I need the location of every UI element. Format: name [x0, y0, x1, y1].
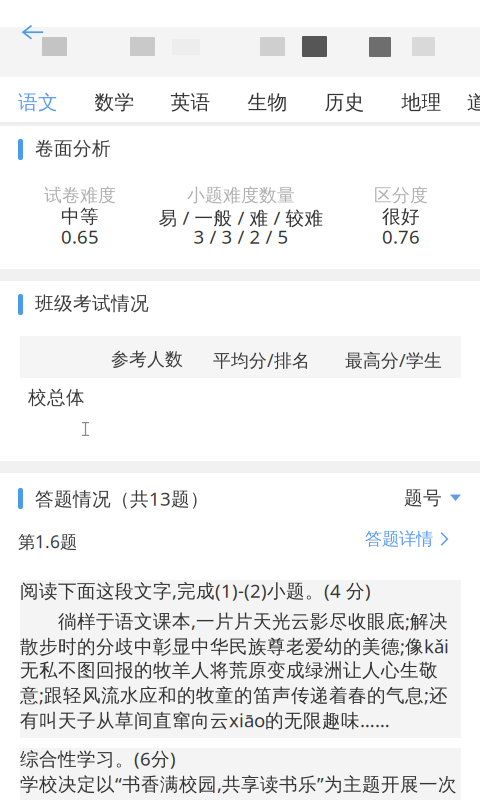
button[interactable]: 地理: [383, 80, 460, 125]
staticText: 答题情况（共13题）: [35, 486, 209, 511]
staticText: 参考人数: [111, 348, 183, 370]
button[interactable]: Back: [11, 25, 55, 65]
staticText: 中等: [61, 205, 99, 228]
staticText: 班级考试情况: [35, 292, 149, 315]
staticText: 3 / 3 / 2 / 5: [193, 224, 288, 249]
button[interactable]: 英语: [152, 80, 229, 125]
staticText: 英语: [170, 90, 210, 115]
staticText: 答题详情: [365, 528, 433, 550]
staticText: 阅读下面这段文字,完成(1)-(2)小题。(4 分): [20, 578, 371, 603]
staticText: 0.76: [382, 224, 420, 249]
staticText: 卷面分析: [35, 137, 111, 160]
staticText: 道: [467, 90, 480, 115]
staticText: 平均分/排名: [213, 348, 310, 372]
button[interactable]: 数学: [76, 80, 153, 125]
button[interactable]: 生物: [229, 80, 306, 125]
staticText: 第1.6题: [18, 530, 77, 553]
staticText: 生物: [247, 90, 287, 115]
staticText: 综合性学习。(6分): [20, 746, 176, 771]
button[interactable]: 题号: [404, 486, 461, 510]
staticText: 小题难度数量: [187, 184, 295, 206]
staticText: 易 / 一般 / 难 / 较难: [158, 205, 323, 230]
staticText: 校总体: [28, 386, 85, 409]
staticText: 最高分/学生: [345, 348, 442, 372]
button[interactable]: 语文: [0, 80, 76, 125]
staticText: 徜样于语文课本,一片片天光云影尽收眼底;解决散步时的分歧中彰显中华民族尊老爱幼的…: [20, 608, 449, 732]
button[interactable]: 历史: [306, 80, 383, 125]
button[interactable]: 答题详情: [365, 528, 449, 550]
staticText: 数学: [94, 90, 134, 115]
staticText: 题号: [404, 486, 442, 509]
staticText: 语文: [18, 90, 58, 115]
staticText: 区分度: [374, 184, 428, 206]
staticText: 0.65: [61, 224, 99, 249]
staticText: 很好: [382, 205, 420, 228]
button[interactable]: 道: [467, 80, 480, 125]
staticText: 地理: [401, 90, 441, 115]
staticText: 学校决定以“书香满校园,共享读书乐”为主题开展一次: [20, 771, 457, 796]
staticText: 试卷难度: [44, 184, 116, 206]
staticText: 历史: [324, 90, 364, 115]
